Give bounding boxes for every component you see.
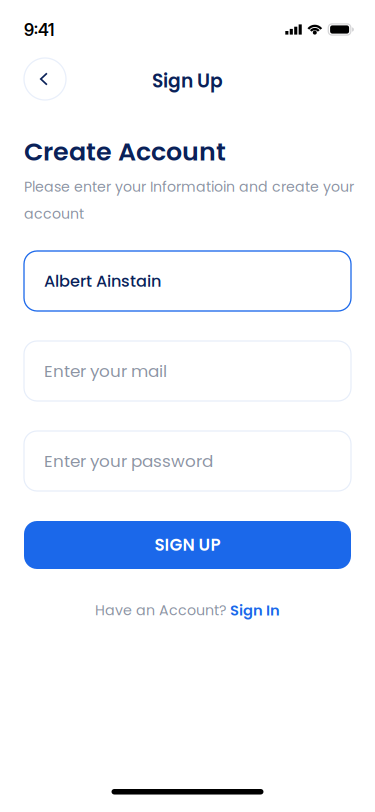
- staticText: Enter your password: [44, 449, 213, 473]
- staticText: Albert Ainstain: [44, 270, 161, 292]
- staticText: Please enter your Informatioin and creat…: [24, 177, 354, 224]
- staticText: Sign Up: [152, 68, 223, 94]
- staticText: SIGN UP: [154, 533, 220, 557]
- button[interactable]: Enter your password: [24, 431, 351, 491]
- staticText: 9:41: [24, 20, 54, 40]
- button[interactable]: SIGN UP: [24, 521, 351, 569]
- button[interactable]: Enter your mail: [24, 341, 351, 401]
- button[interactable]: Sign In: [230, 600, 280, 620]
- staticText: Have an Account?: [95, 600, 230, 620]
- staticText: Sign In: [230, 600, 280, 620]
- button[interactable]: Back: [24, 58, 66, 100]
- staticText: Enter your mail: [44, 359, 167, 383]
- staticText: Create Account: [24, 134, 226, 169]
- button[interactable]: Albert Ainstain: [24, 251, 351, 311]
